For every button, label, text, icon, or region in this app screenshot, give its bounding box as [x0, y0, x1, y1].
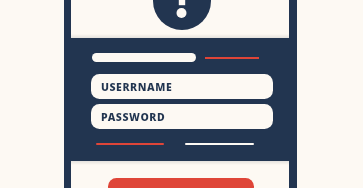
button[interactable]: PASSWORD	[91, 104, 273, 129]
staticText: USERRNAME	[101, 80, 173, 94]
other: Secure login	[153, 0, 211, 30]
button[interactable]: Log in	[108, 178, 254, 188]
button[interactable]: Sign up	[185, 143, 254, 145]
button[interactable]: USERRNAME	[91, 74, 273, 99]
button[interactable]: Forgot password	[96, 143, 164, 145]
staticText: PASSWORD	[101, 110, 166, 124]
